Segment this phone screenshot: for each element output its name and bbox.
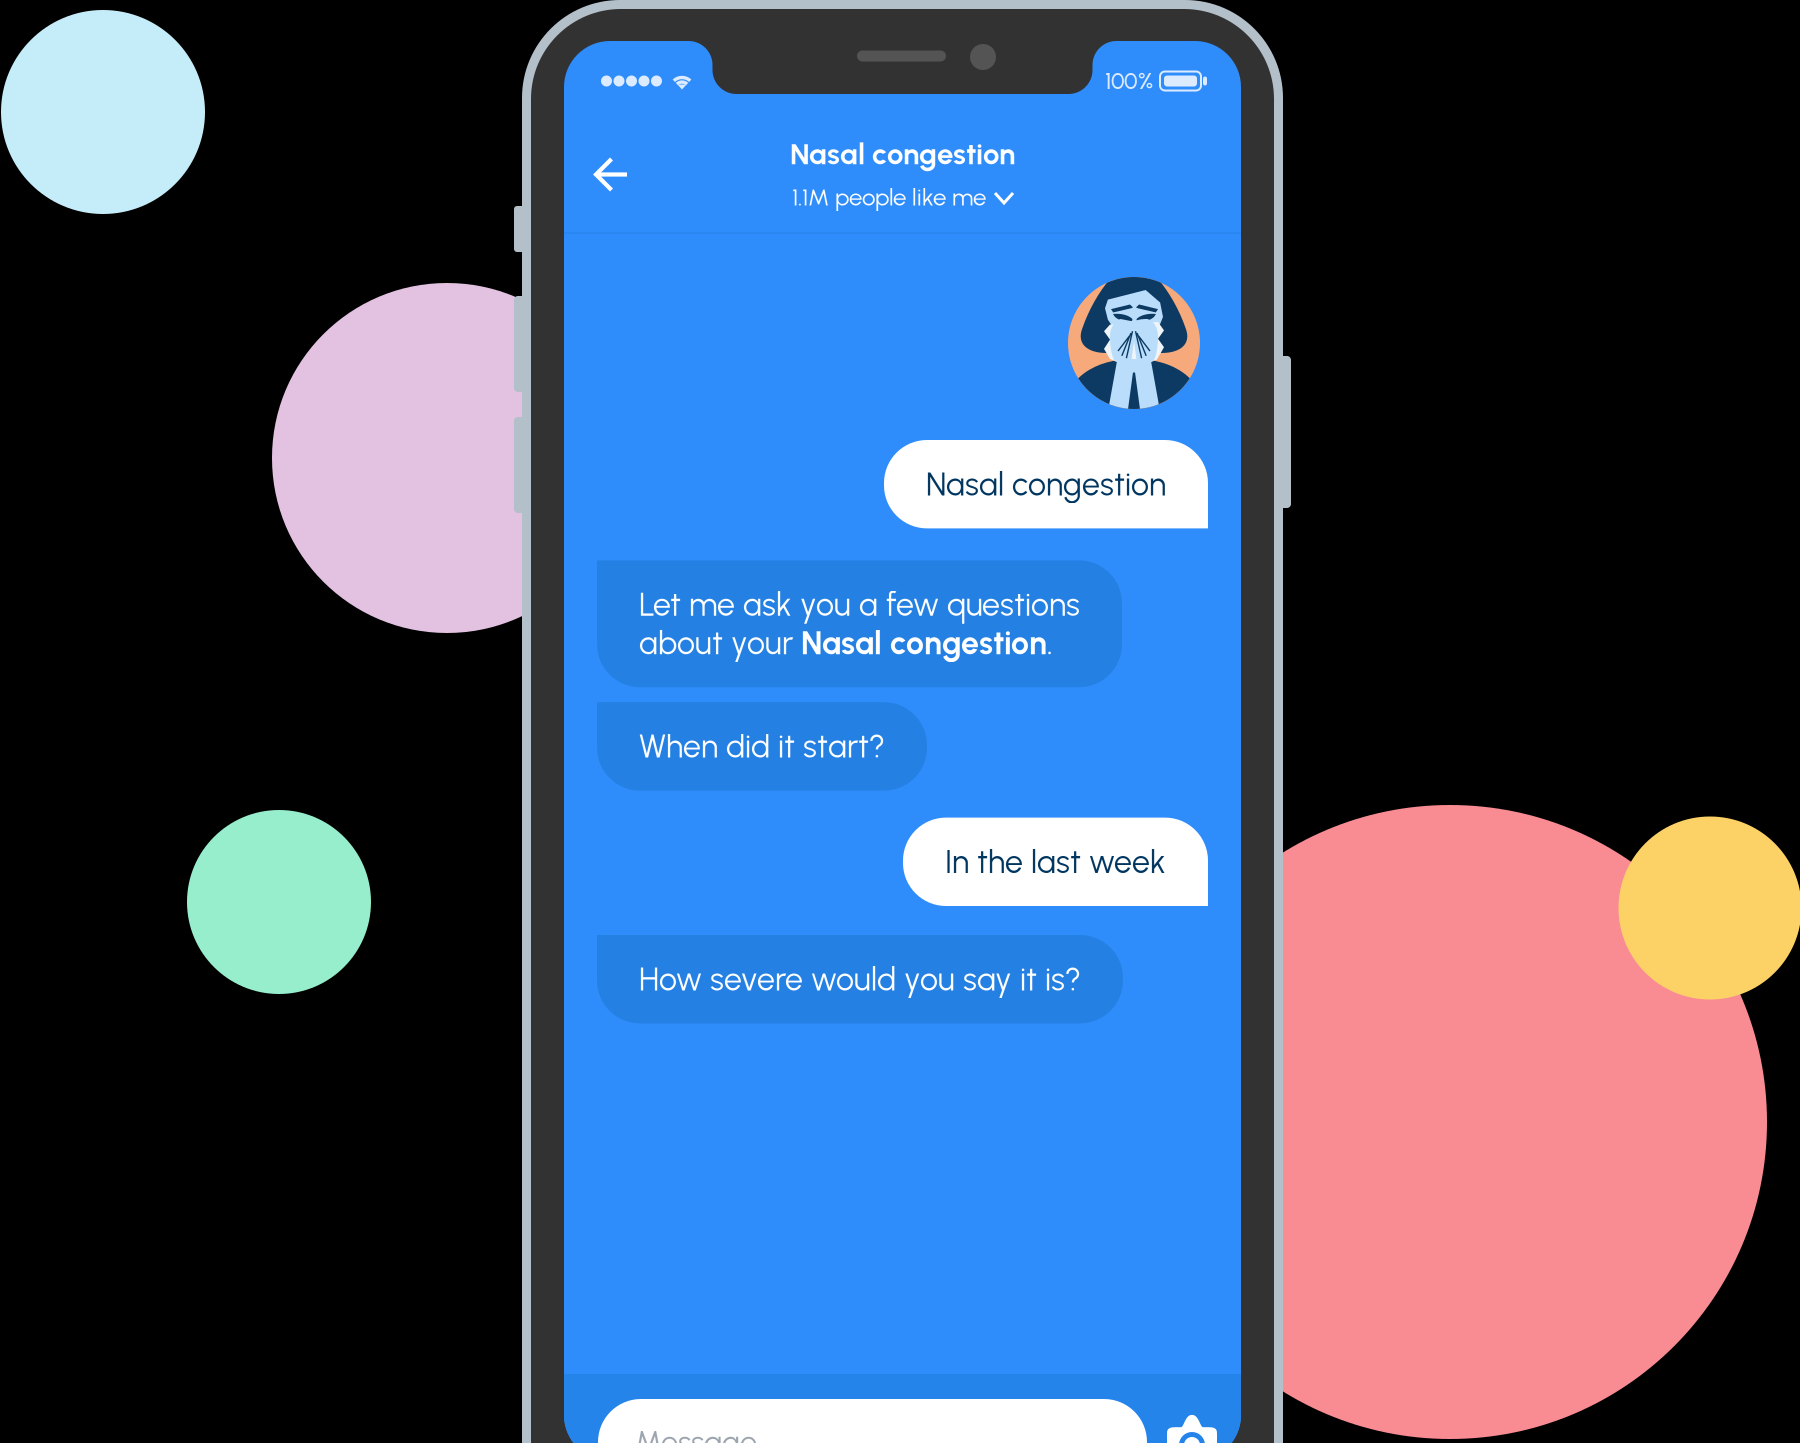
staticText: Nasal congestion: [926, 465, 1166, 503]
button[interactable]: Nasal congestion: [884, 440, 1208, 528]
staticText: How severe would you say it is?: [639, 960, 1081, 998]
staticText: about your: [639, 624, 801, 662]
button[interactable]: Let me ask you a few questions: [597, 560, 1122, 687]
staticText: Let me ask you a few questions: [639, 585, 1080, 624]
button[interactable]: How severe would you say it is?: [597, 935, 1123, 1023]
staticText: .: [1047, 624, 1053, 662]
button[interactable]: Camera: [1147, 1399, 1221, 1443]
staticText: Nasal congestion: [790, 136, 1015, 172]
staticText: In the last week: [945, 843, 1166, 881]
button[interactable]: Message: [598, 1399, 1147, 1443]
button[interactable]: 1.1M people like me: [786, 177, 1019, 217]
button[interactable]: When did it start?: [597, 702, 927, 791]
staticText: 100%: [1105, 67, 1153, 95]
staticText: Message: [635, 1424, 757, 1443]
staticText: When did it start?: [639, 727, 885, 766]
button[interactable]: In the last week: [903, 818, 1208, 906]
staticText: 1.1M people like me: [792, 183, 986, 211]
button[interactable]: Back: [579, 142, 644, 207]
staticText: Nasal congestion: [801, 624, 1047, 662]
